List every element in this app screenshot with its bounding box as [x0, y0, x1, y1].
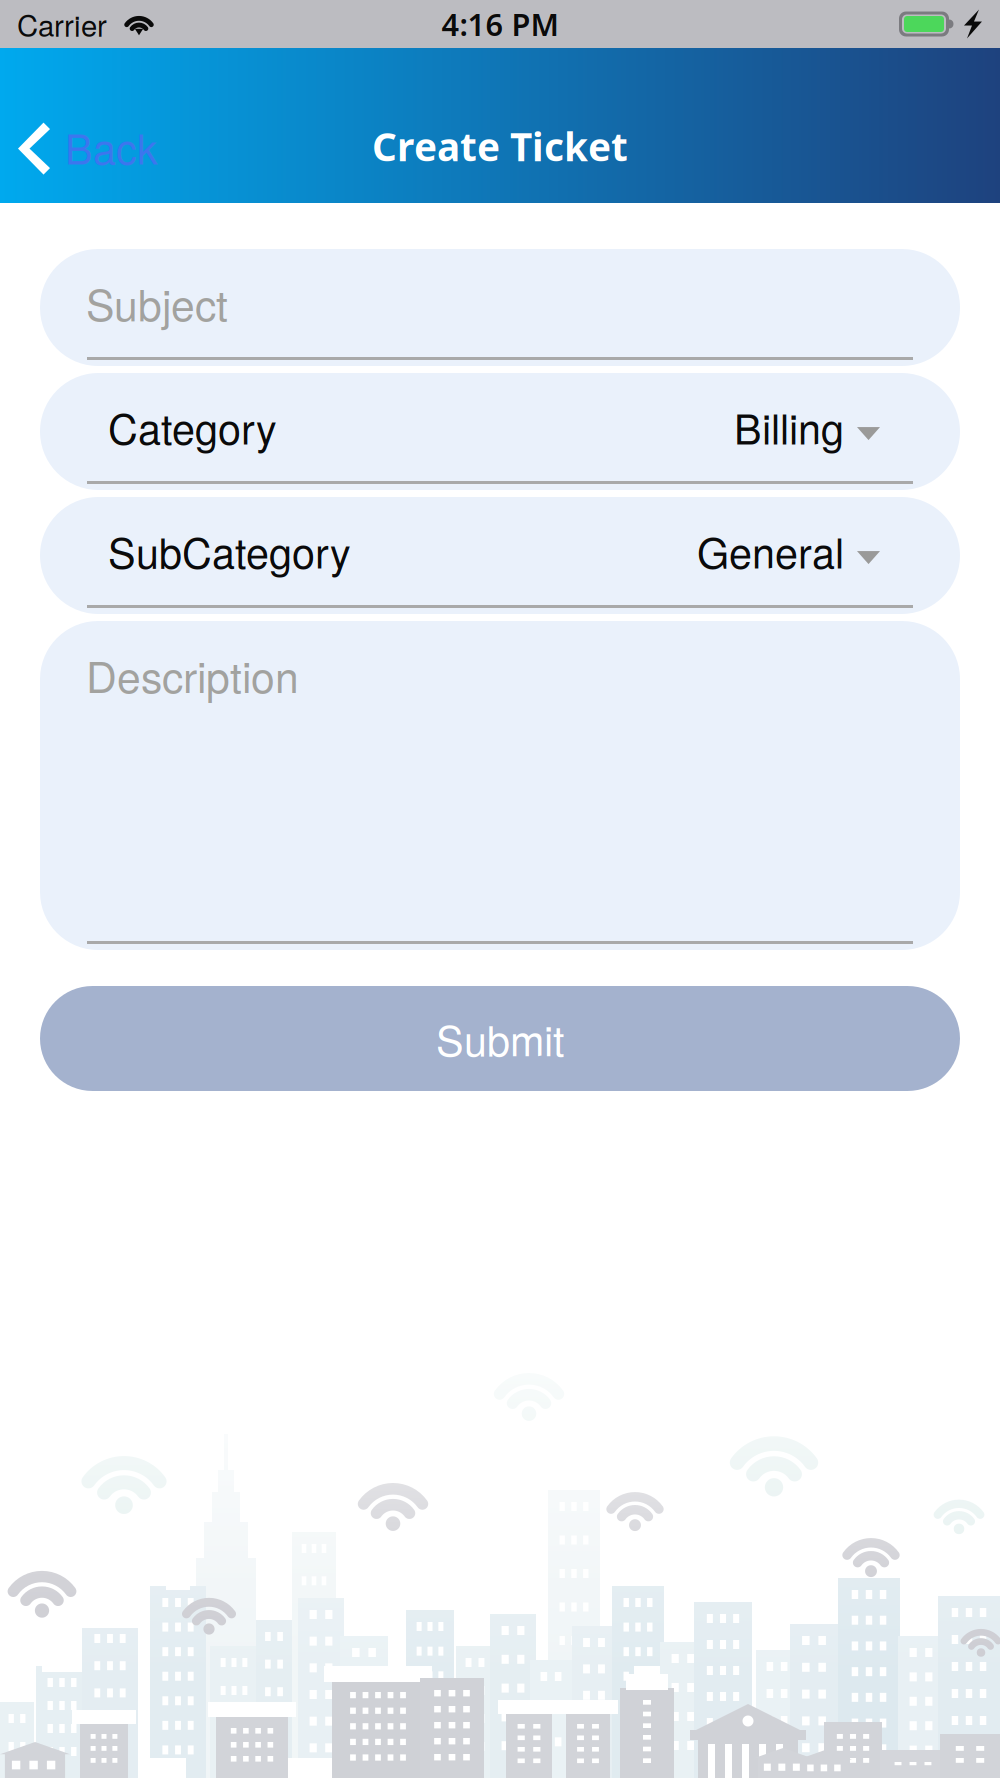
- staticText: Description: [86, 644, 299, 705]
- staticText: Billing: [734, 397, 844, 456]
- button[interactable]: Category: [40, 373, 960, 490]
- button[interactable]: SubCategory: [40, 497, 960, 614]
- staticText: Subject: [86, 272, 228, 333]
- staticText: 4:16 PM: [441, 3, 558, 45]
- staticText: Carrier: [17, 3, 107, 45]
- staticText: General: [697, 521, 844, 580]
- button[interactable]: Back: [0, 99, 158, 198]
- staticText: Category: [108, 397, 277, 456]
- button[interactable]: Subject: [40, 249, 960, 366]
- staticText: SubCategory: [108, 521, 351, 580]
- button[interactable]: Submit: [40, 986, 960, 1091]
- staticText: Create Ticket: [372, 120, 628, 173]
- staticText: Back: [65, 117, 158, 176]
- staticText: Submit: [436, 1009, 564, 1068]
- button[interactable]: Description: [40, 621, 960, 950]
